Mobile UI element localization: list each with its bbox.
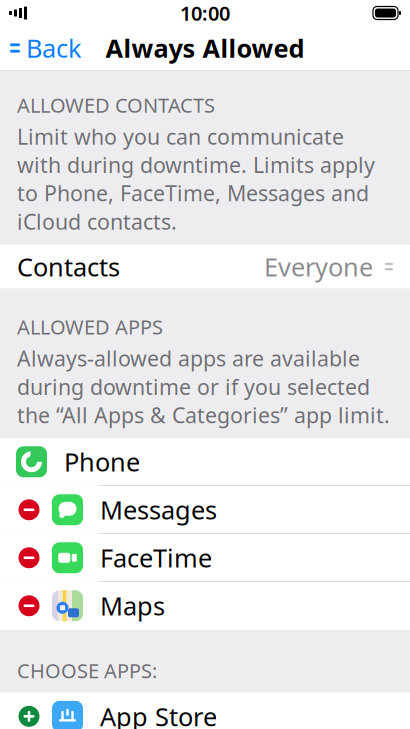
staticText: 10:00 [180, 0, 230, 26]
button[interactable]: App Store [0, 693, 410, 729]
button[interactable]: Maps [0, 582, 410, 630]
button[interactable]: Contacts [0, 245, 410, 289]
button[interactable]: FaceTime [0, 534, 410, 582]
staticText: CHOOSE APPS: [17, 657, 157, 684]
button[interactable]: Phone [0, 438, 410, 486]
staticText: Back [26, 31, 82, 65]
staticText: Contacts [17, 250, 120, 283]
button[interactable]: Back [0, 26, 94, 70]
staticText: Everyone [264, 250, 373, 283]
staticText: Phone [64, 445, 140, 479]
staticText: ALLOWED APPS [17, 314, 163, 340]
staticText: Maps [100, 589, 165, 623]
staticText: App Store [100, 699, 217, 729]
staticText: Always Allowed [105, 31, 304, 65]
staticText: FaceTime [100, 541, 212, 575]
staticText: Limit who you can communicate with durin… [17, 122, 375, 236]
staticText: Messages [100, 493, 217, 527]
staticText: Always-allowed apps are available during… [17, 344, 390, 429]
button[interactable]: Messages [0, 486, 410, 534]
staticText: ALLOWED CONTACTS [17, 92, 215, 118]
